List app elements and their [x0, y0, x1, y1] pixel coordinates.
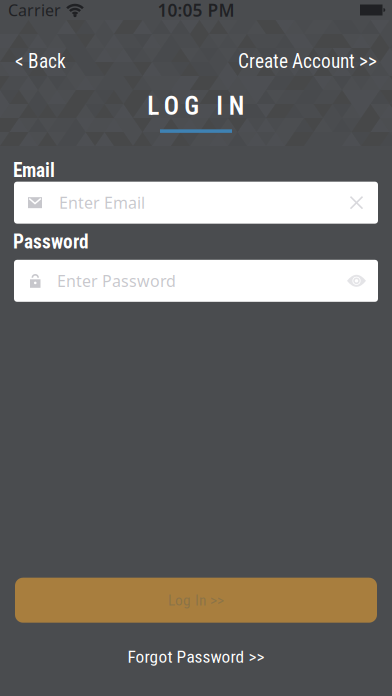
staticText: LOG IN: [147, 91, 245, 121]
staticText: Password: [13, 231, 89, 253]
staticText: Email: [13, 159, 55, 182]
button[interactable]: < Back: [15, 50, 66, 73]
button[interactable]: Log In >>: [15, 578, 377, 623]
staticText: Forgot Password >>: [127, 647, 264, 667]
button[interactable]: Create Account >>: [238, 50, 377, 73]
staticText: Create Account >>: [238, 50, 377, 73]
button[interactable]: Forgot Password >>: [127, 647, 264, 667]
staticText: Enter Email: [59, 192, 145, 213]
staticText: Carrier: [8, 0, 61, 21]
staticText: 10:05 PM: [157, 0, 234, 21]
staticText: Log In >>: [168, 591, 224, 609]
button[interactable]: Clear email: [350, 196, 378, 209]
staticText: Enter Password: [57, 270, 176, 291]
button[interactable]: Show password: [347, 274, 378, 287]
staticText: < Back: [15, 50, 66, 73]
